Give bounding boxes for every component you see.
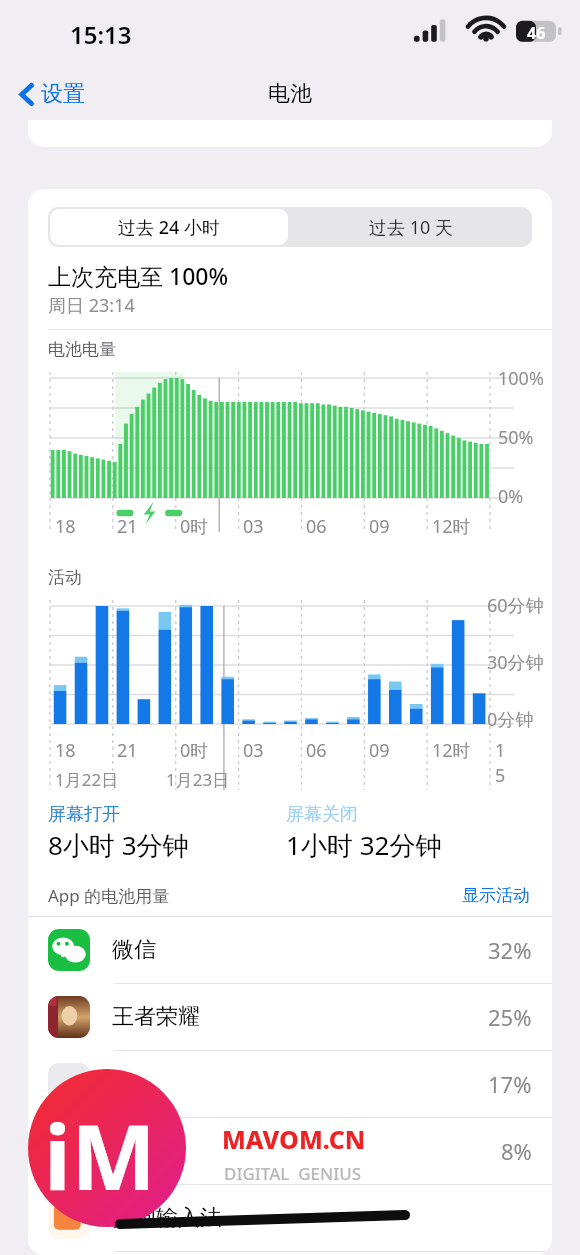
staticText: MAVOM.CN bbox=[222, 1122, 366, 1156]
staticText: 电池电量 bbox=[48, 339, 116, 360]
button[interactable]: 过去 24 小时 bbox=[50, 209, 288, 245]
staticText: 1月23日 bbox=[166, 768, 230, 791]
button[interactable]: 过去 10 天 bbox=[290, 207, 532, 247]
staticText: 46 bbox=[527, 22, 546, 44]
staticText: 21 bbox=[117, 514, 138, 539]
staticText: 12时 bbox=[432, 738, 471, 763]
staticText: 屏幕关闭 bbox=[286, 803, 358, 826]
staticText: DIGITAL GENIUS bbox=[224, 1162, 362, 1185]
staticText: 8% bbox=[501, 1136, 532, 1166]
staticText: 1小时 32分钟 bbox=[286, 827, 442, 863]
other: App icon bbox=[48, 996, 90, 1038]
staticText: 0分钟 bbox=[487, 707, 534, 732]
staticText: 03 bbox=[243, 514, 264, 539]
staticText: 1月22日 bbox=[55, 768, 119, 791]
staticText: 06 bbox=[306, 738, 327, 763]
other: App icon bbox=[48, 1197, 90, 1239]
button[interactable]: App icon bbox=[28, 1051, 552, 1118]
staticText: 30分钟 bbox=[487, 650, 544, 675]
button[interactable]: 显示活动 bbox=[460, 883, 532, 908]
staticText: 周日 23:14 bbox=[48, 293, 135, 318]
other: App icon bbox=[48, 1130, 90, 1172]
staticText: 电池 bbox=[268, 80, 312, 108]
staticText: 8小时 3分钟 bbox=[48, 827, 189, 863]
staticText: 上次充电至 100% bbox=[48, 260, 229, 291]
staticText: 过去 10 天 bbox=[369, 215, 453, 240]
staticText: 屏幕打开 bbox=[48, 803, 120, 826]
staticText: 100% bbox=[498, 366, 544, 391]
other: App icon bbox=[48, 1063, 90, 1105]
staticText: 0% bbox=[498, 484, 524, 509]
other: App icon bbox=[48, 929, 90, 971]
staticText: 过去 24 小时 bbox=[118, 215, 220, 240]
staticText: 王者荣耀 bbox=[112, 1003, 200, 1031]
button[interactable]: App icon bbox=[28, 984, 552, 1051]
staticText: 15:13 bbox=[70, 18, 132, 51]
staticText: 设置 bbox=[41, 80, 85, 108]
staticText: iM bbox=[44, 1094, 156, 1217]
staticText: 21 bbox=[117, 738, 138, 763]
staticText: 25% bbox=[488, 1002, 532, 1032]
staticText: 活动 bbox=[48, 567, 82, 588]
staticText: 0时 bbox=[180, 738, 209, 763]
button[interactable]: 设置 bbox=[12, 75, 91, 113]
staticText: 17% bbox=[488, 1069, 532, 1099]
staticText: 50% bbox=[498, 425, 534, 450]
staticText: 32% bbox=[488, 935, 532, 965]
staticText: 0时 bbox=[180, 514, 209, 539]
staticText: 18 bbox=[55, 514, 76, 539]
staticText: 03 bbox=[243, 738, 264, 763]
button[interactable]: App icon bbox=[28, 1185, 552, 1252]
staticText: 09 bbox=[369, 738, 390, 763]
staticText: 18 bbox=[55, 738, 76, 763]
staticText: 搜狗输入法 bbox=[112, 1204, 222, 1232]
button[interactable]: App icon bbox=[28, 1118, 552, 1185]
staticText: 微信 bbox=[112, 936, 156, 964]
staticText: 09 bbox=[369, 514, 390, 539]
staticText: 显示活动 bbox=[462, 885, 530, 906]
button[interactable]: App icon bbox=[28, 917, 552, 984]
staticText: 06 bbox=[306, 514, 327, 539]
staticText: 60分钟 bbox=[487, 593, 544, 618]
staticText: App 的电池用量 bbox=[48, 884, 170, 907]
staticText: 12时 bbox=[432, 514, 471, 539]
